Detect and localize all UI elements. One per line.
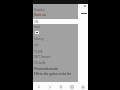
button[interactable]: Back [33, 82, 44, 90]
staticText: URL [34, 20, 39, 24]
staticText: cdn [34, 43, 39, 47]
staticText: 75.000 [34, 50, 43, 54]
staticText: Kinsara [34, 8, 45, 12]
staticText: Plasmodesmata [34, 67, 58, 71]
staticText: DATT Tamash [34, 55, 51, 59]
staticText: SSL buffa [34, 61, 46, 65]
staticText: Effect abc golas certa tia [34, 72, 71, 76]
button[interactable]: Forward [44, 82, 55, 90]
button[interactable]: Tabs [66, 82, 77, 90]
staticText: floating [34, 37, 44, 41]
button[interactable]: Menu [55, 82, 66, 90]
staticText: Hara на [34, 13, 46, 17]
staticText: abcd [34, 25, 40, 29]
button[interactable]: Home [77, 82, 88, 90]
